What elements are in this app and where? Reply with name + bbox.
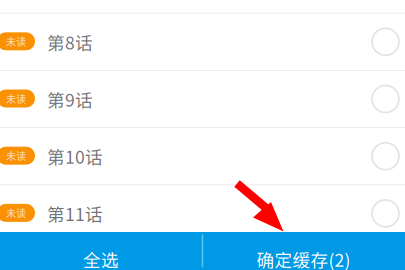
staticText: 第10话: [47, 143, 103, 169]
staticText: 第8话: [47, 29, 93, 55]
button[interactable]: Select 第11话: [378, 200, 405, 227]
staticText: 第9话: [47, 86, 93, 112]
button[interactable]: 未读: [0, 14, 405, 70]
staticText: 第11话: [47, 201, 103, 226]
staticText: 确定缓存(2): [256, 246, 350, 270]
staticText: 未读: [6, 206, 26, 220]
button[interactable]: Select 第9话: [378, 85, 405, 112]
staticText: 全选: [83, 246, 119, 270]
button[interactable]: Select 第8话: [378, 28, 405, 55]
staticText: 未读: [6, 91, 26, 106]
button[interactable]: 确定缓存(2): [202, 232, 405, 270]
button[interactable]: 未读: [0, 71, 405, 127]
button[interactable]: 未读: [0, 185, 405, 241]
staticText: 未读: [6, 34, 26, 49]
button[interactable]: Select 第10话: [378, 143, 405, 170]
button[interactable]: 未读: [0, 128, 405, 184]
button[interactable]: 全选: [0, 232, 202, 270]
staticText: 未读: [6, 148, 26, 163]
